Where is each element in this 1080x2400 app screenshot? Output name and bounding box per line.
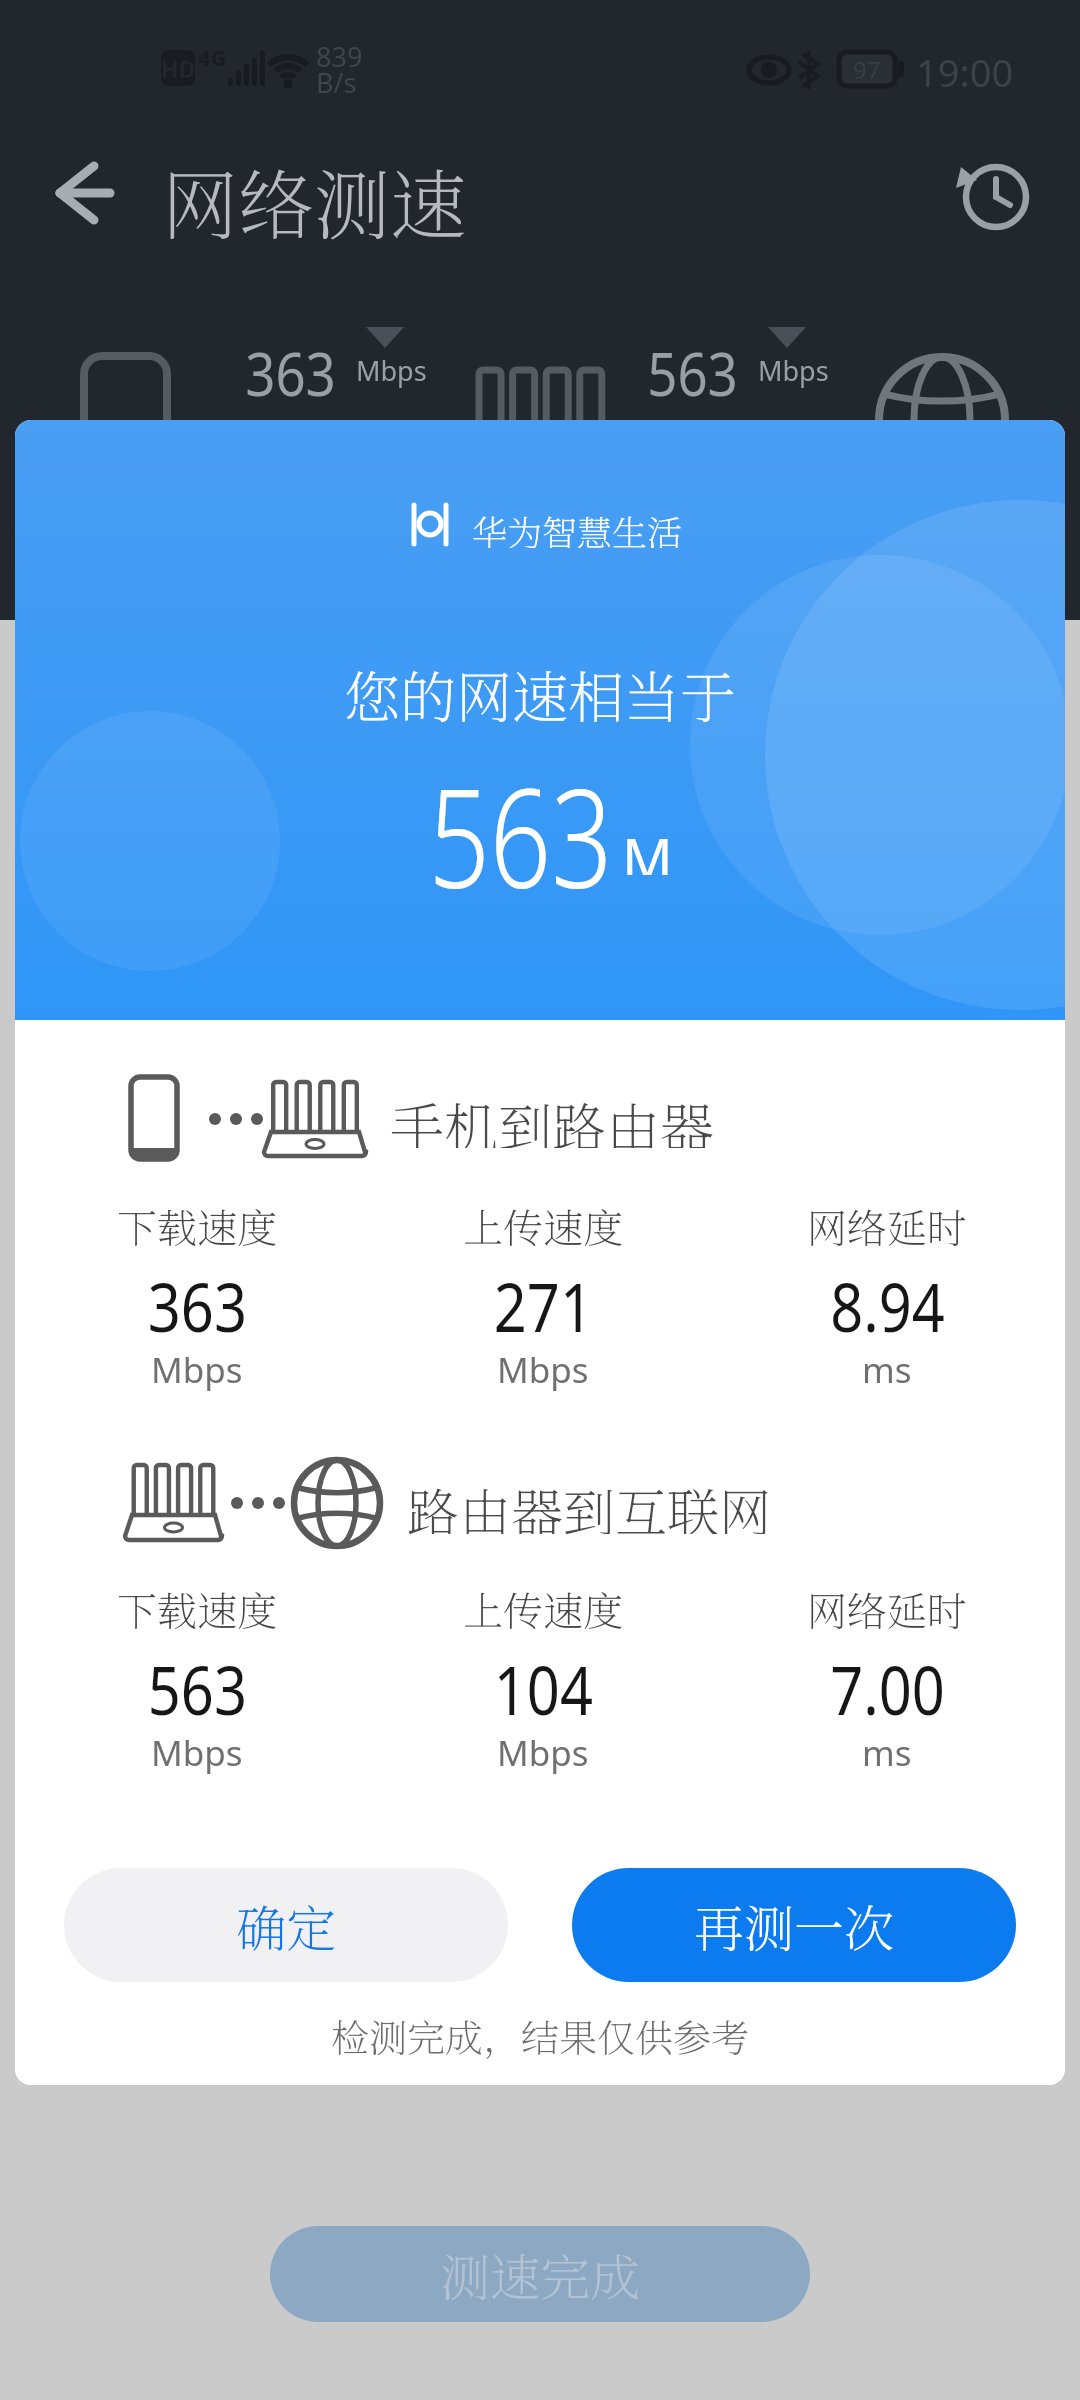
staticText: 路由器到互联网 [407, 1472, 772, 1534]
staticText: 手机到路由器 [390, 1086, 714, 1148]
staticText: 上传速度 [463, 1580, 623, 1636]
staticText: 网络延时 [807, 1197, 967, 1253]
staticText: 上传速度 [463, 1197, 623, 1253]
staticText: Mbps [497, 1346, 589, 1394]
staticText: 确定 [236, 1889, 336, 1961]
staticText: Mbps [356, 352, 427, 388]
staticText: 测速完成 [440, 2238, 640, 2310]
button[interactable]: 确定 [64, 1868, 508, 1982]
staticText: Mbps [151, 1346, 243, 1394]
staticText: Mbps [151, 1729, 243, 1777]
staticText: 网络延时 [807, 1580, 967, 1636]
staticText: ms [862, 1729, 912, 1777]
staticText: Mbps [758, 352, 829, 388]
staticText: 检测完成，结果仅供参考 [331, 2008, 750, 2063]
button[interactable]: 测速完成 [270, 2226, 810, 2322]
staticText: 104 [494, 1642, 593, 1735]
staticText: M [622, 820, 673, 875]
staticText: 839 [316, 38, 363, 68]
staticText: 7.00 [830, 1642, 945, 1735]
staticText: 您的网速相当于 [344, 654, 736, 722]
staticText: 19:00 [916, 46, 1014, 90]
staticText: Mbps [497, 1729, 589, 1777]
button[interactable]: 再测一次 [572, 1868, 1016, 1982]
staticText: B/s [316, 64, 357, 94]
staticText: 再测一次 [694, 1889, 894, 1961]
staticText: 4G [198, 42, 227, 68]
staticText: 271 [494, 1259, 593, 1352]
staticText: 网络测速 [162, 146, 466, 240]
staticText: 363 [245, 332, 336, 404]
staticText: 563 [647, 332, 738, 404]
staticText: 363 [148, 1259, 247, 1352]
staticText: 563 [428, 743, 613, 898]
button[interactable] [40, 150, 130, 240]
button[interactable] [955, 155, 1039, 239]
staticText: 下载速度 [117, 1580, 277, 1636]
staticText: 华为智慧生活 [472, 506, 683, 548]
staticText: 下载速度 [117, 1197, 277, 1253]
staticText: 8.94 [830, 1259, 945, 1352]
staticText: ms [862, 1346, 912, 1394]
staticText: 563 [148, 1642, 247, 1735]
staticText: HD [161, 53, 196, 84]
staticText: 97 [853, 53, 881, 86]
